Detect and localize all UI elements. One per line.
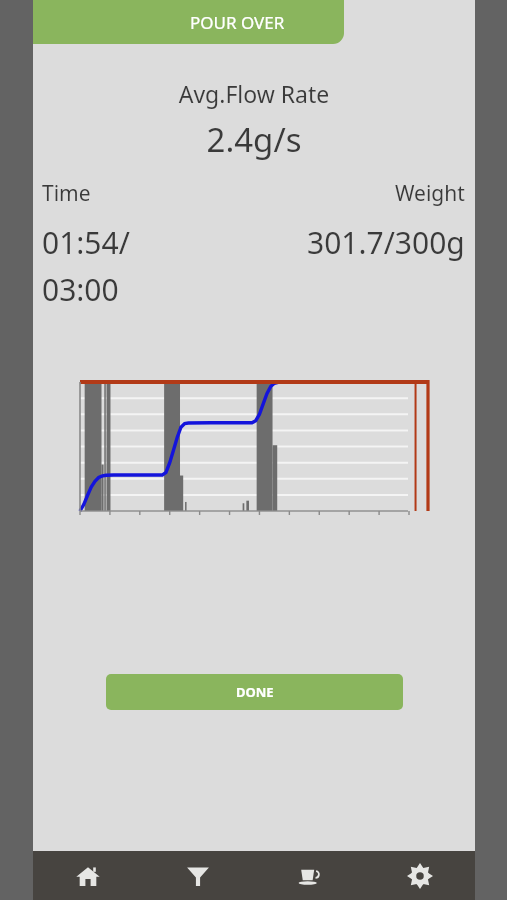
button[interactable]: Home (33, 851, 143, 900)
button[interactable]: POUR OVER (33, 0, 344, 44)
button[interactable]: Settings (364, 851, 475, 900)
staticText: 301.7/300g (307, 222, 465, 263)
button[interactable]: Filter (143, 851, 253, 900)
staticText: Avg.Flow Rate (33, 78, 475, 109)
staticText: 2.4g/s (33, 117, 475, 162)
button[interactable]: Brew (253, 851, 364, 900)
staticText: 01:54/ 03:00 (42, 222, 130, 310)
staticText: POUR OVER (190, 11, 285, 34)
button[interactable]: DONE (106, 674, 403, 710)
staticText: Weight (395, 179, 465, 208)
staticText: DONE (236, 683, 274, 701)
staticText: Time (42, 179, 91, 208)
